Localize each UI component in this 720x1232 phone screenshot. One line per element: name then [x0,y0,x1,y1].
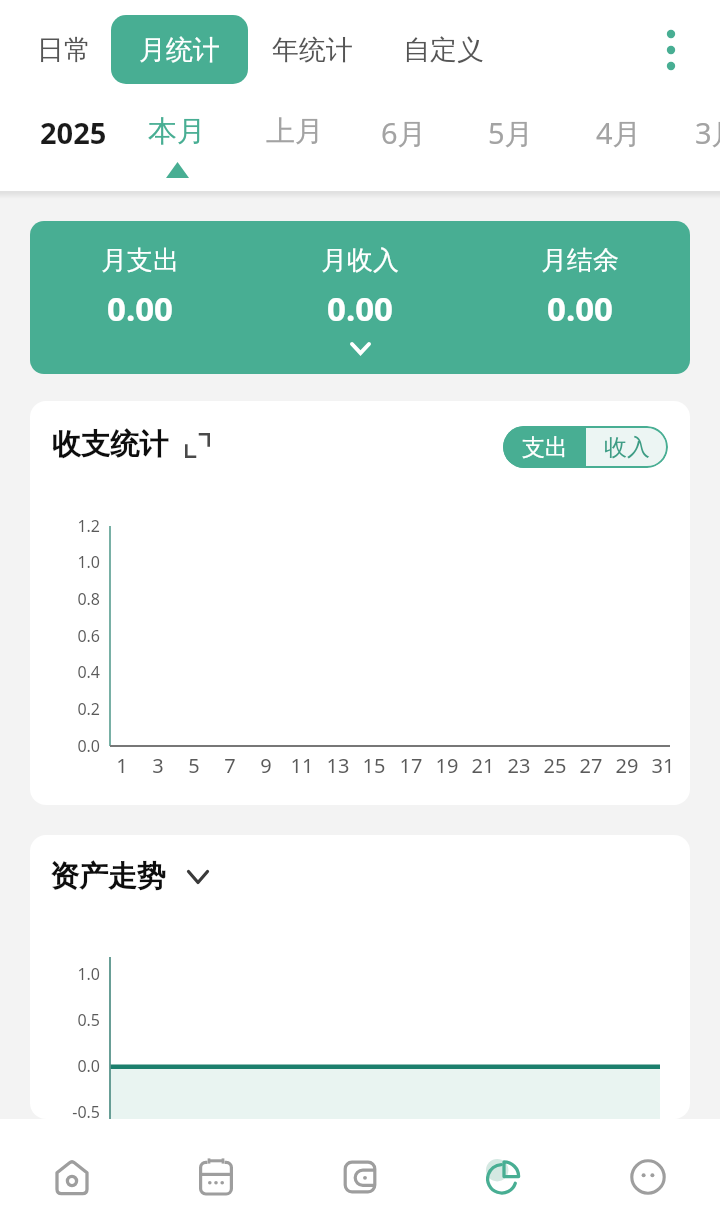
button[interactable] [17,100,125,192]
staticText: 0.2 [45,698,100,720]
button[interactable]: More options [638,16,704,84]
staticText: 31 [643,752,683,779]
button[interactable] [456,100,564,192]
button[interactable]: 月支出 [30,221,690,374]
button[interactable] [564,100,672,192]
staticText: 月收入 [321,244,399,277]
staticText: 1.0 [45,551,100,573]
staticText: 0.0 [45,735,100,757]
button[interactable]: Wallet [288,1119,432,1232]
staticText: 3 [138,752,178,779]
staticText: 5月 [488,113,688,153]
staticText: 收支统计 [52,426,168,463]
staticText: 17 [391,752,431,779]
button[interactable] [123,100,231,192]
staticText: 月结余 [541,244,619,277]
staticText: 年统计 [272,33,353,67]
staticText: 3月 [695,113,720,153]
staticText: 月统计 [139,33,220,67]
button[interactable]: Home [0,1119,144,1232]
button[interactable]: Calendar [144,1119,288,1232]
button[interactable]: 收入 [586,426,668,468]
staticText: 支出 [522,433,568,462]
staticText: 0.8 [45,588,100,610]
staticText: 4月 [596,113,720,153]
staticText: 1.2 [45,515,100,537]
staticText: 25 [535,752,575,779]
staticText: 上月 [266,113,466,150]
staticText: 15 [354,752,394,779]
staticText: 19 [427,752,467,779]
staticText: 6月 [381,113,581,153]
button[interactable]: Fullscreen [175,423,220,468]
button[interactable] [668,100,720,192]
button[interactable]: More [576,1119,720,1232]
staticText: -0.5 [45,1101,100,1119]
button[interactable]: 自定义 [388,15,498,84]
staticText: 资产走势 [50,858,166,895]
staticText: 日常 [37,33,91,67]
staticText: 月支出 [101,244,179,277]
staticText: 23 [499,752,539,779]
staticText: 0.00 [547,286,613,331]
staticText: 2025 [40,113,240,152]
staticText: 21 [463,752,503,779]
button[interactable]: 支出 [503,426,586,468]
button[interactable] [349,100,457,192]
staticText: 9 [246,752,286,779]
staticText: 0.00 [107,286,173,331]
staticText: 13 [318,752,358,779]
staticText: 0.5 [45,1009,100,1031]
staticText: 0.4 [45,661,100,683]
staticText: 11 [282,752,322,779]
staticText: 0.6 [45,625,100,647]
button[interactable]: 年统计 [257,15,367,84]
staticText: 本月 [148,113,348,150]
staticText: 1.0 [45,963,100,985]
staticText: 0.0 [45,1055,100,1077]
button[interactable]: Statistics [432,1119,576,1232]
button[interactable]: Expand [176,855,220,899]
staticText: 29 [607,752,647,779]
staticText: 7 [210,752,250,779]
button[interactable]: 日常 [22,15,105,84]
staticText: 0.00 [327,286,393,331]
staticText: 1 [102,752,142,779]
staticText: 收入 [604,433,650,462]
staticText: 自定义 [403,33,484,67]
button[interactable]: 月统计 [111,15,248,84]
button[interactable] [240,100,348,192]
staticText: 27 [571,752,611,779]
staticText: 5 [174,752,214,779]
